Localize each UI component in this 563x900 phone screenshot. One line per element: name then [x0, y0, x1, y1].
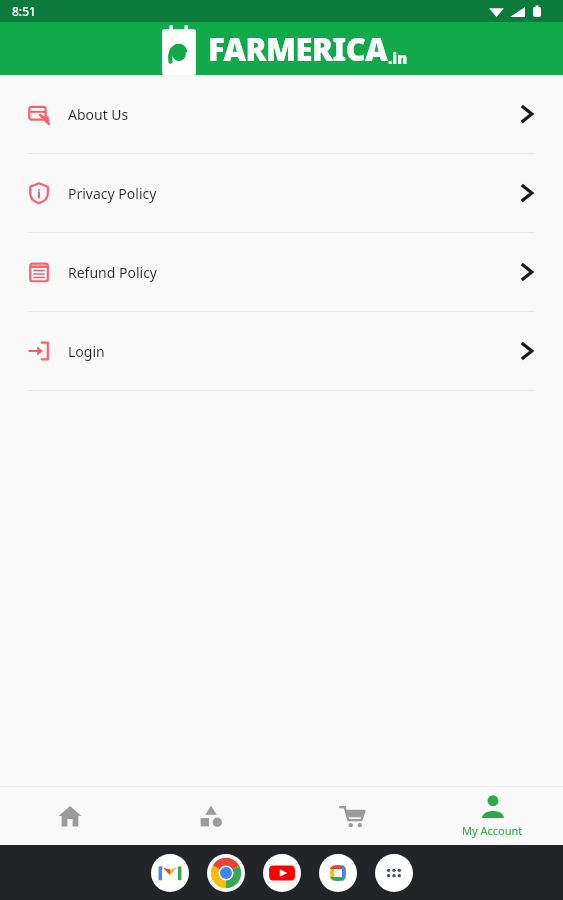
- staticText: FARMERICA: [208, 28, 388, 70]
- staticText: 8:51: [12, 3, 36, 19]
- button[interactable]: About Us: [0, 75, 563, 153]
- button[interactable]: Home: [0, 787, 140, 845]
- staticText: My Account: [462, 823, 523, 838]
- button[interactable]: Photos: [319, 854, 357, 892]
- staticText: About Us: [68, 105, 129, 124]
- button[interactable]: Chrome: [207, 854, 245, 892]
- button[interactable]: YouTube: [263, 854, 301, 892]
- button[interactable]: My Account: [422, 787, 563, 845]
- button[interactable]: Privacy Policy: [0, 154, 563, 232]
- staticText: Privacy Policy: [68, 184, 157, 203]
- button[interactable]: Login: [0, 312, 563, 390]
- button[interactable]: All apps: [375, 854, 413, 892]
- staticText: Login: [68, 342, 105, 361]
- staticText: .in: [388, 48, 408, 68]
- staticText: Refund Policy: [68, 263, 157, 282]
- button[interactable]: Categories: [140, 787, 281, 845]
- button[interactable]: Gmail: [151, 854, 189, 892]
- button[interactable]: Cart: [281, 787, 422, 845]
- button[interactable]: Refund Policy: [0, 233, 563, 311]
